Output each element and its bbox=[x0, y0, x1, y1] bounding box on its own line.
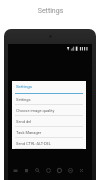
staticText: Send CTRL-ALT-DEL bbox=[16, 141, 51, 146]
button[interactable]: Back bbox=[66, 166, 74, 174]
staticText: Settings bbox=[16, 84, 33, 89]
button[interactable]: Send CTRL-ALT-DEL bbox=[12, 138, 86, 149]
button[interactable]: Home bbox=[44, 166, 52, 174]
button[interactable]: Settings bbox=[55, 166, 63, 174]
button[interactable]: Settings bbox=[12, 94, 86, 105]
button[interactable]: Send del bbox=[12, 116, 86, 127]
button[interactable]: Choose image quality bbox=[12, 105, 86, 116]
staticText: Task Manager bbox=[16, 130, 42, 135]
staticText: Settings bbox=[0, 7, 101, 15]
button[interactable]: Thumbs up bbox=[11, 166, 19, 174]
staticText: Send del bbox=[16, 119, 32, 124]
staticText: Settings bbox=[16, 97, 31, 102]
button[interactable]: Task Manager bbox=[12, 127, 86, 138]
button[interactable]: Close bbox=[77, 166, 85, 174]
button[interactable]: Search bbox=[33, 166, 41, 174]
button[interactable]: Delete bbox=[22, 166, 30, 174]
staticText: Choose image quality bbox=[16, 108, 55, 113]
